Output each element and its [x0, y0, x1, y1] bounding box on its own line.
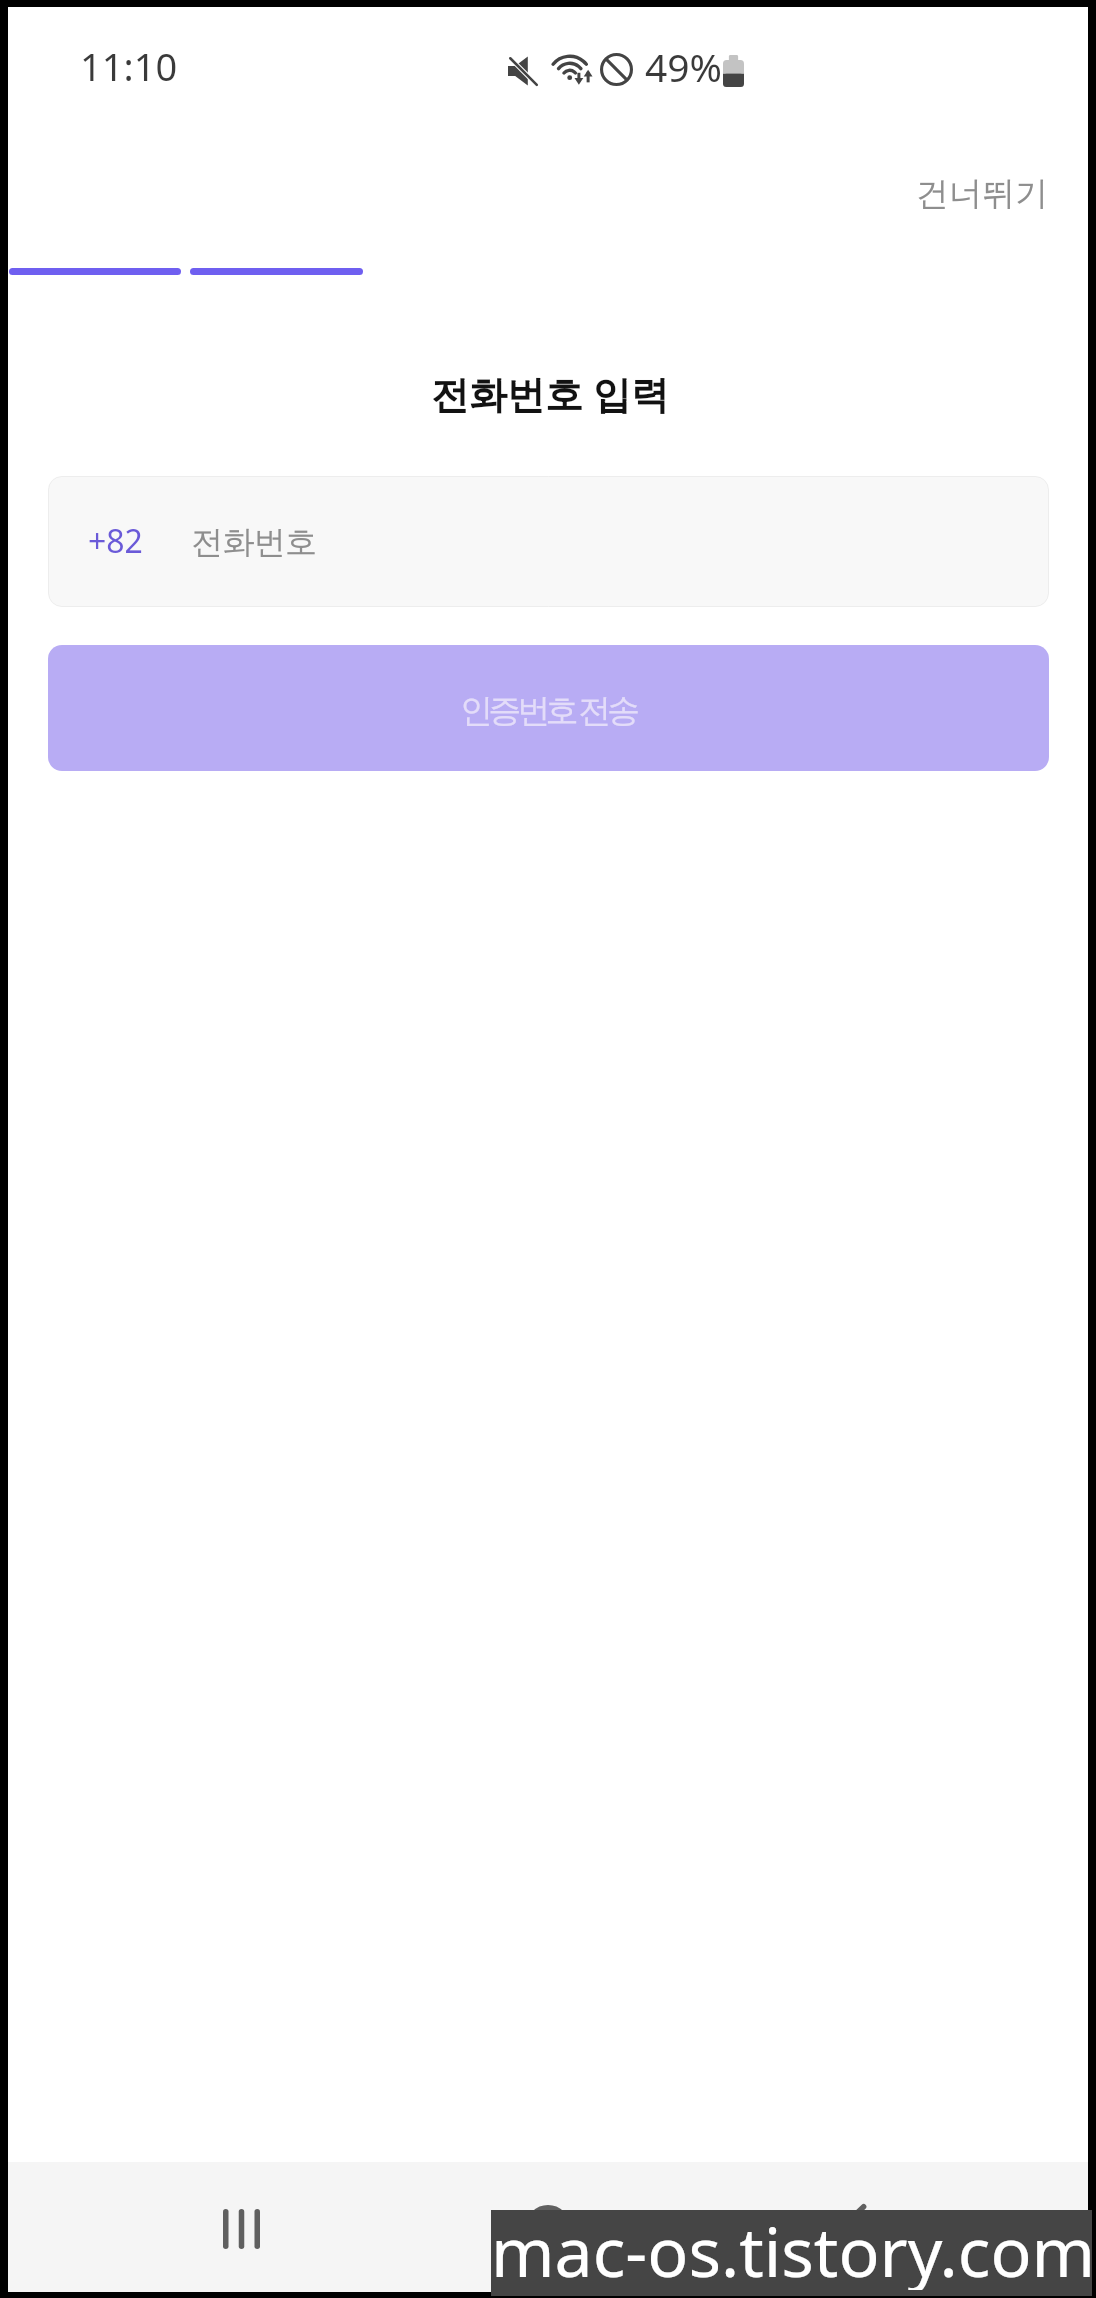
- staticText: 건너뛰기: [916, 173, 1048, 215]
- button[interactable]: Back: [793, 2167, 913, 2287]
- staticText: 인증번호 전송: [460, 687, 636, 732]
- button[interactable]: 인증번호 전송: [48, 645, 1049, 771]
- staticText: 49%: [645, 40, 723, 93]
- staticText: 전화번호: [191, 522, 317, 562]
- button[interactable]: Recents: [181, 2169, 301, 2289]
- staticText: +82: [88, 519, 143, 563]
- staticText: 11:10: [80, 40, 178, 92]
- button[interactable]: 건너뛰기: [892, 157, 1072, 231]
- staticText: 전화번호 입력: [10, 367, 1090, 419]
- button[interactable]: Home: [488, 2167, 608, 2287]
- staticText: mac-os.tistory.com: [491, 2204, 1092, 2290]
- button[interactable]: +82: [48, 476, 1049, 607]
